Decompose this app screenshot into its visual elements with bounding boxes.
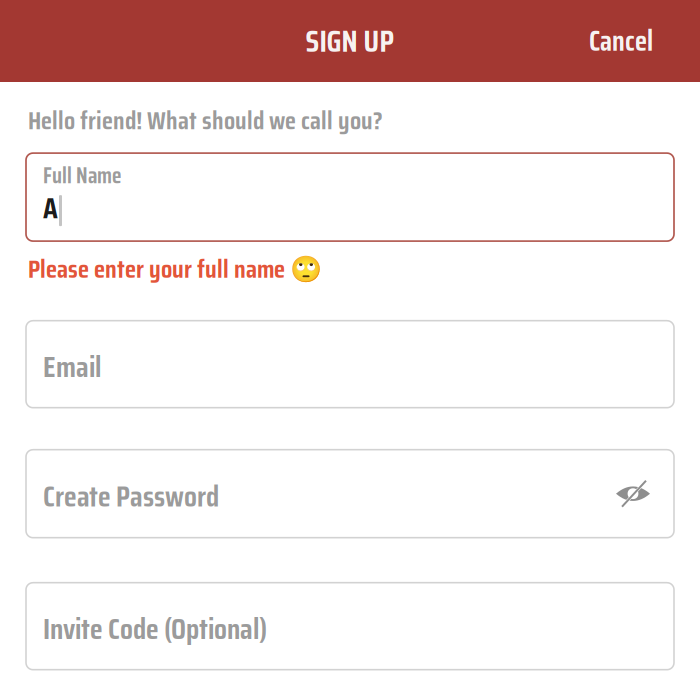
staticText: Email [43,349,101,385]
button[interactable]: Invite Code (Optional) [26,583,674,670]
staticText: Cancel [589,24,653,58]
button[interactable]: Full Name [26,153,674,241]
staticText: Please enter your full name 🙄 [28,253,322,285]
staticText: Full Name [43,162,121,189]
staticText: Create Password [43,478,219,514]
staticText: SIGN UP [305,22,394,60]
button[interactable]: Email [26,321,674,408]
staticText: Hello friend! What should we call you? [28,105,383,136]
button[interactable]: Cancel [569,12,700,70]
button[interactable]: Create Password [26,450,674,538]
staticText: A [43,190,58,226]
staticText: Invite Code (Optional) [43,611,267,647]
